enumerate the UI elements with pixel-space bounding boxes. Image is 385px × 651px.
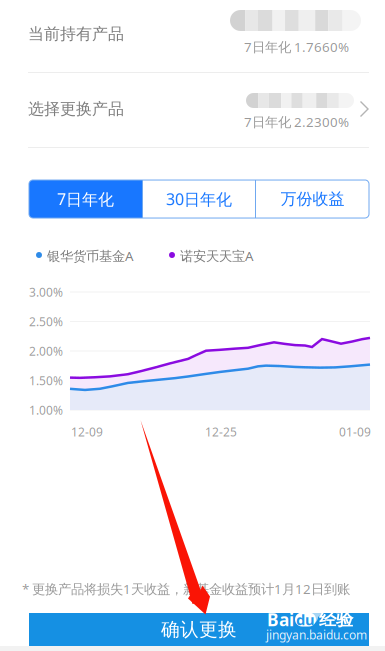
staticText: 3.00% (29, 284, 63, 300)
button[interactable] (0, 0, 385, 72)
button[interactable]: 30日年化 (143, 180, 255, 218)
staticText: 当前持有产品 (28, 24, 124, 44)
staticText: 30日年化 (166, 188, 232, 210)
button[interactable]: 7日年化 (29, 180, 142, 218)
staticText: 12-09 (71, 424, 103, 440)
staticText: 7日年化 1.7660% (244, 38, 349, 56)
staticText: 01-09 (339, 424, 371, 440)
button[interactable]: 确认更换 (29, 613, 369, 646)
staticText: 确认更换 (161, 618, 237, 641)
staticText: * 更换产品将损失1天收益，新基金收益预计1月12日到账 (22, 580, 350, 598)
staticText: jingyan.baidu.com (266, 627, 367, 643)
staticText: 经验 (319, 609, 353, 630)
button[interactable]: 万份收益 (256, 180, 369, 218)
staticText: 2.00% (29, 343, 63, 359)
staticText: 万份收益 (280, 189, 344, 209)
staticText: du (296, 610, 315, 629)
button[interactable] (0, 73, 385, 147)
staticText: 诺安天天宝A (180, 247, 254, 265)
staticText: 12-25 (205, 424, 237, 440)
staticText: 选择更换产品 (28, 99, 124, 119)
staticText: Bai (267, 608, 294, 631)
staticText: 1.00% (29, 402, 63, 418)
staticText: 2.50% (29, 313, 63, 329)
staticText: 1.50% (29, 372, 63, 388)
staticText: 7日年化 2.2300% (244, 113, 349, 131)
staticText: 银华货币基金A (47, 247, 134, 265)
staticText: 7日年化 (57, 188, 114, 210)
